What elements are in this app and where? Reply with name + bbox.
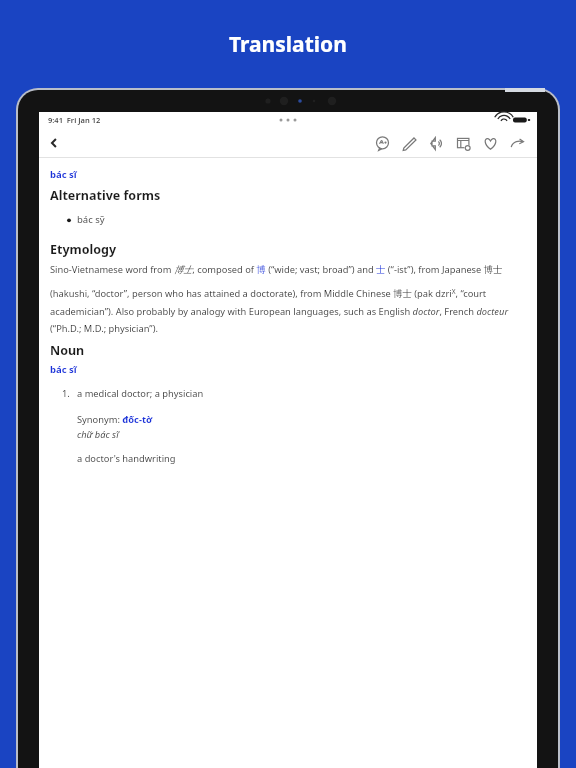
staticText: Sino-Vietnamese word from 博士, composed o…	[50, 263, 526, 335]
staticText: bác sỹ	[77, 213, 105, 226]
staticText: 1.	[62, 387, 70, 400]
staticText: a doctor's handwriting	[77, 452, 176, 465]
button[interactable]: Edit	[396, 130, 423, 156]
staticText: Etymology	[50, 241, 117, 258]
button[interactable]: Translate	[369, 130, 396, 156]
button[interactable]: Share	[504, 130, 531, 156]
button[interactable]: Lookup	[450, 130, 477, 156]
staticText: 9:41 Fri Jan 12	[48, 115, 101, 125]
staticText: bác sĩ	[50, 168, 77, 181]
staticText: Synonym: đốc-tờ	[77, 413, 153, 426]
button[interactable]: Favorite	[477, 130, 504, 156]
staticText: chữ bác sĩ	[77, 428, 119, 441]
staticText: Translation	[229, 30, 347, 59]
staticText: Alternative forms	[50, 187, 161, 204]
staticText: bác sĩ	[50, 363, 77, 376]
button[interactable]: Back	[42, 131, 66, 155]
button[interactable]: Listen	[423, 130, 450, 156]
staticText: a medical doctor; a physician	[77, 387, 204, 400]
staticText: Noun	[50, 342, 85, 359]
